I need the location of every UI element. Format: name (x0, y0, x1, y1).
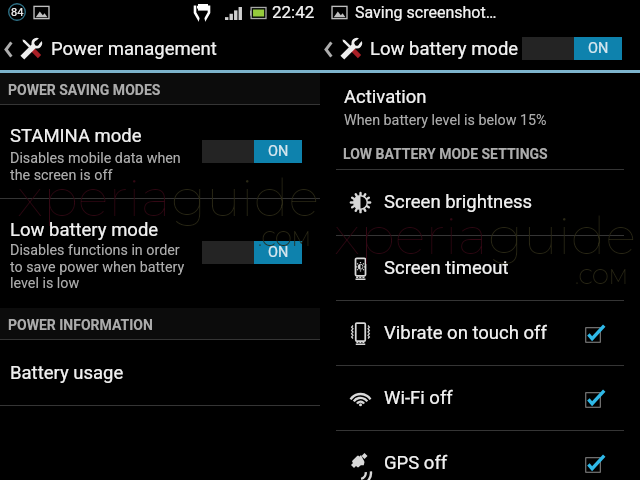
button[interactable]: Low battery mode (0, 199, 320, 308)
staticText: Disables functions in order to save powe… (10, 242, 185, 291)
staticText: xperia (334, 204, 488, 267)
staticText: Power management (51, 38, 217, 60)
staticText: LOW BATTERY MODE SETTINGS (343, 146, 548, 162)
button[interactable]: GPS off (320, 431, 640, 480)
staticText: Disables mobile data when the screen is … (10, 150, 181, 183)
staticText: Screen timeout (384, 257, 509, 279)
button[interactable]: Screen timeout (320, 236, 640, 301)
staticText: Wi-Fi off (384, 387, 453, 409)
staticText: guide (488, 204, 637, 267)
button[interactable]: Battery usage (0, 340, 320, 405)
staticText: Saving screenshot… (355, 3, 497, 22)
button[interactable]: ON (522, 37, 622, 60)
button[interactable]: ON (202, 140, 302, 163)
button[interactable]: Navigate up (0, 0, 320, 70)
button[interactable]: Navigate up (320, 0, 640, 70)
staticText: Screen brightness (384, 191, 533, 213)
staticText: 84 (11, 6, 24, 19)
staticText: Battery usage (10, 362, 124, 384)
staticText: guide (171, 166, 320, 229)
button[interactable]: ON (202, 241, 302, 264)
staticText: STAMINA mode (10, 125, 142, 147)
staticText: .COM (575, 265, 628, 289)
other: Navigate up (324, 41, 333, 58)
staticText: Low battery mode (370, 38, 519, 60)
button[interactable]: Wi-Fi off (320, 366, 640, 431)
staticText: xperia (17, 166, 171, 229)
button[interactable]: Vibrate on touch off (320, 301, 640, 366)
staticText: POWER INFORMATION (8, 317, 153, 333)
staticText: .COM (258, 227, 311, 251)
staticText: ON (588, 40, 609, 57)
staticText: GPS off (384, 452, 448, 474)
staticText: POWER SAVING MODES (8, 82, 161, 98)
staticText: Low battery mode (10, 219, 159, 241)
other: Navigate up (4, 41, 13, 58)
button[interactable]: STAMINA mode (0, 105, 320, 198)
staticText: Activation (344, 86, 427, 108)
staticText: Vibrate on touch off (384, 322, 547, 344)
staticText: ON (268, 244, 289, 261)
button[interactable]: Activation (320, 73, 640, 135)
button[interactable]: Screen brightness (320, 170, 640, 235)
staticText: 22:42 (272, 2, 315, 22)
staticText: ON (268, 143, 289, 160)
staticText: When battery level is below 15% (344, 112, 547, 129)
